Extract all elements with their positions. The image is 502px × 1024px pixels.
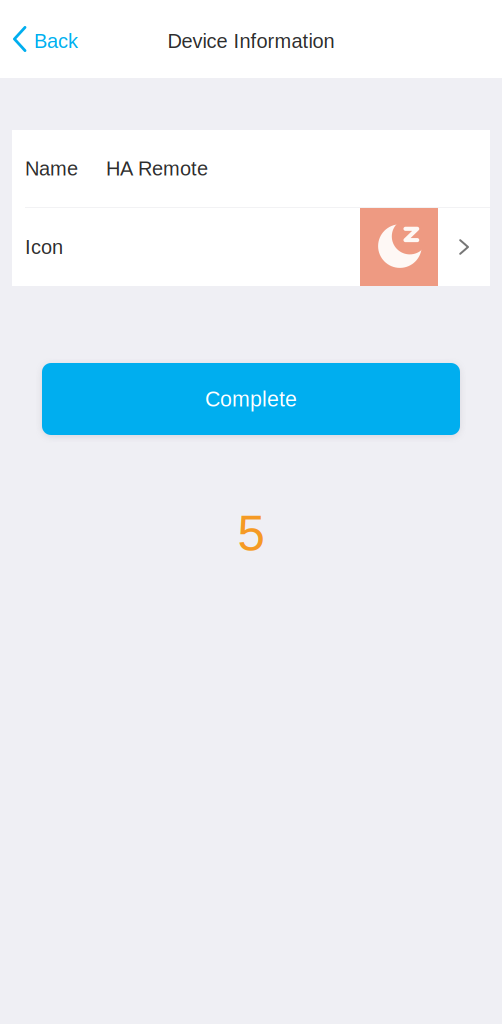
staticText: Icon	[25, 236, 63, 258]
button[interactable]: Icon	[12, 208, 490, 286]
button[interactable]: Back	[0, 0, 88, 78]
button[interactable]: Complete	[42, 363, 460, 435]
staticText: Back	[34, 30, 78, 52]
button[interactable]: Name	[12, 130, 490, 207]
staticText: Name	[25, 157, 78, 180]
staticText: Device Information	[167, 30, 334, 52]
staticText: 5	[237, 506, 264, 561]
staticText: HA Remote	[106, 157, 208, 180]
staticText: Complete	[205, 387, 297, 411]
